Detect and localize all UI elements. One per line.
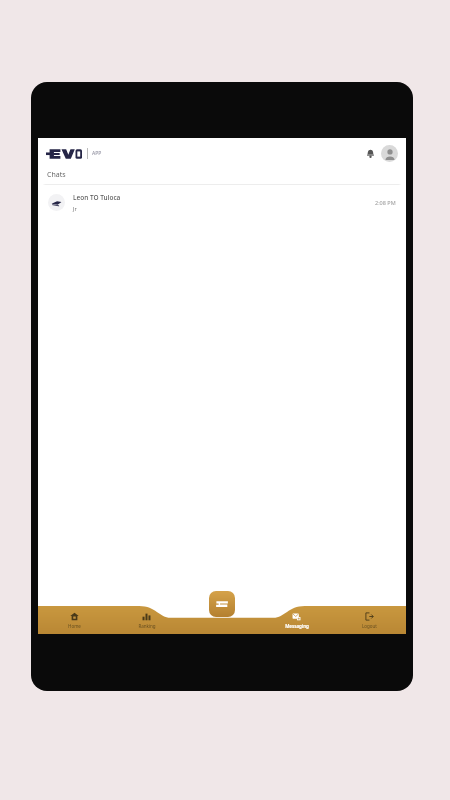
staticText: 2:08 PM (375, 199, 396, 206)
staticText: Messaging (285, 623, 309, 629)
button[interactable]: Messaging (260, 606, 333, 634)
button[interactable]: EVO home (209, 591, 235, 617)
button[interactable]: Profile (381, 145, 398, 162)
staticText: APP (92, 150, 102, 157)
staticText: Jr (73, 205, 77, 212)
staticText: Home (68, 623, 81, 629)
button[interactable]: Logout (333, 606, 406, 634)
button[interactable]: Home (38, 606, 110, 634)
button[interactable]: Notifications (362, 145, 378, 161)
staticText: Logout (362, 623, 377, 629)
button[interactable]: Ranking (110, 606, 183, 634)
staticText: Ranking (138, 623, 156, 629)
staticText: Chats (47, 170, 66, 180)
staticText: Leon TO Tuloca (73, 193, 121, 202)
button[interactable]: Leon TO Tuloca (40, 185, 404, 219)
